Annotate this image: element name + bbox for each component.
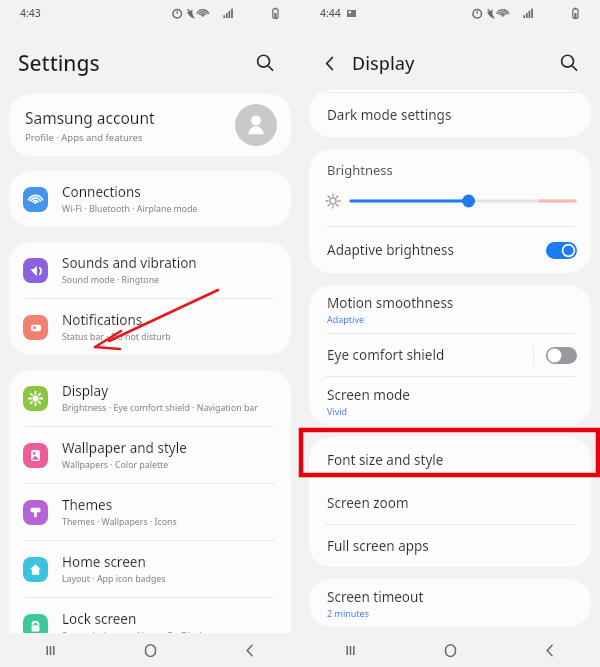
staticText: Home screen	[62, 553, 146, 571]
button[interactable]: Connections	[9, 171, 291, 227]
button[interactable]: Font size and style	[309, 437, 591, 482]
staticText: Screen timeout	[327, 588, 424, 606]
button[interactable]: Recents	[0, 633, 100, 667]
staticText: Sounds and vibration	[62, 254, 197, 272]
button[interactable]: Home screen	[9, 541, 291, 597]
staticText: 2 minutes	[327, 607, 369, 619]
button[interactable]: Dark mode settings	[309, 93, 591, 137]
button[interactable]: Home	[100, 633, 200, 667]
staticText: Display	[352, 51, 415, 76]
staticText: Layout · App icon badges	[62, 573, 166, 585]
button[interactable]: Home	[400, 633, 500, 667]
staticText: Eye comfort shield	[327, 346, 445, 364]
staticText: Themes · Wallpapers · Icons	[62, 516, 177, 528]
staticText: Wi-Fi · Bluetooth · Airplane mode	[62, 203, 198, 215]
staticText: Sound mode · Ringtone	[62, 274, 160, 286]
button[interactable]: Wallpaper and style	[9, 427, 291, 483]
staticText: Full screen apps	[327, 537, 429, 555]
button[interactable]: Screen timeout	[309, 579, 591, 627]
staticText: Wallpaper and style	[62, 439, 187, 457]
button[interactable]: Full screen apps	[309, 525, 591, 567]
staticText: Screen mode	[327, 386, 410, 404]
staticText: Brightness	[327, 161, 393, 179]
staticText: Brightness · Eye comfort shield · Naviga…	[62, 402, 258, 414]
button[interactable]: Lock screen	[9, 598, 291, 654]
staticText: Screen lock type · Always On Display	[62, 630, 212, 642]
button[interactable]: Samsung account	[9, 94, 291, 156]
staticText: Adaptive brightness	[327, 241, 454, 259]
button[interactable]: Search	[552, 46, 586, 80]
staticText: Screen zoom	[327, 494, 409, 512]
staticText: Dark mode settings	[327, 106, 452, 124]
staticText: Adaptive	[327, 313, 365, 325]
staticText: Themes	[62, 496, 113, 514]
staticText: Status bar · Do not disturb	[62, 331, 171, 343]
staticText: Motion smoothness	[327, 294, 454, 312]
button[interactable]: Motion smoothness	[309, 285, 591, 333]
staticText: Connections	[62, 183, 141, 201]
staticText: 4:44	[320, 6, 341, 20]
staticText: Notifications	[62, 311, 143, 329]
button[interactable]: Display	[9, 370, 291, 426]
button[interactable]: Search	[248, 46, 282, 80]
button[interactable]: Screen mode	[309, 377, 591, 425]
button[interactable]: Adaptive brightness	[309, 227, 591, 273]
button[interactable]: Recents	[300, 633, 400, 667]
button[interactable]: Eye comfort shield	[309, 334, 591, 376]
staticText: Wallpapers · Color palette	[62, 459, 169, 471]
button[interactable]: Back	[314, 47, 346, 79]
button[interactable]: Sounds and vibration	[9, 242, 291, 298]
button[interactable]: Screen zoom	[309, 482, 591, 524]
staticText: Vivid	[327, 405, 348, 417]
button[interactable]: Back	[500, 633, 600, 667]
staticText: Settings	[18, 49, 100, 78]
button[interactable]: Themes	[9, 484, 291, 540]
staticText: 4:43	[20, 6, 41, 20]
staticText: Display	[62, 382, 109, 400]
staticText: Lock screen	[62, 610, 137, 628]
button[interactable]: Notifications	[9, 299, 291, 355]
staticText: Profile · Apps and features	[25, 131, 143, 144]
staticText: Samsung account	[25, 107, 155, 128]
staticText: Font size and style	[327, 451, 444, 469]
button[interactable]: Back	[200, 633, 300, 667]
